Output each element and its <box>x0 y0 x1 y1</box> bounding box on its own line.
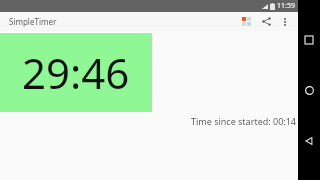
staticText: minutes <box>103 85 134 96</box>
button[interactable]: Share <box>256 12 276 31</box>
button[interactable]: Apps <box>236 12 256 31</box>
staticText: 29:46 <box>22 44 130 101</box>
staticText: 11:59 <box>277 1 295 11</box>
button[interactable]: Back <box>298 130 320 152</box>
button[interactable]: 29:46 <box>0 33 152 112</box>
staticText: alert me every <box>16 82 84 96</box>
staticText: SimpleTimer <box>9 16 57 27</box>
button[interactable]: 30 <box>88 82 100 96</box>
staticText: Time since started: 00:14 <box>0 115 296 127</box>
button[interactable]: Slider <box>8 102 141 114</box>
button[interactable]: Home <box>298 79 320 101</box>
button[interactable]: Slider <box>8 58 141 70</box>
button[interactable]: Recent apps <box>298 29 320 51</box>
button[interactable]: More options <box>276 13 294 31</box>
